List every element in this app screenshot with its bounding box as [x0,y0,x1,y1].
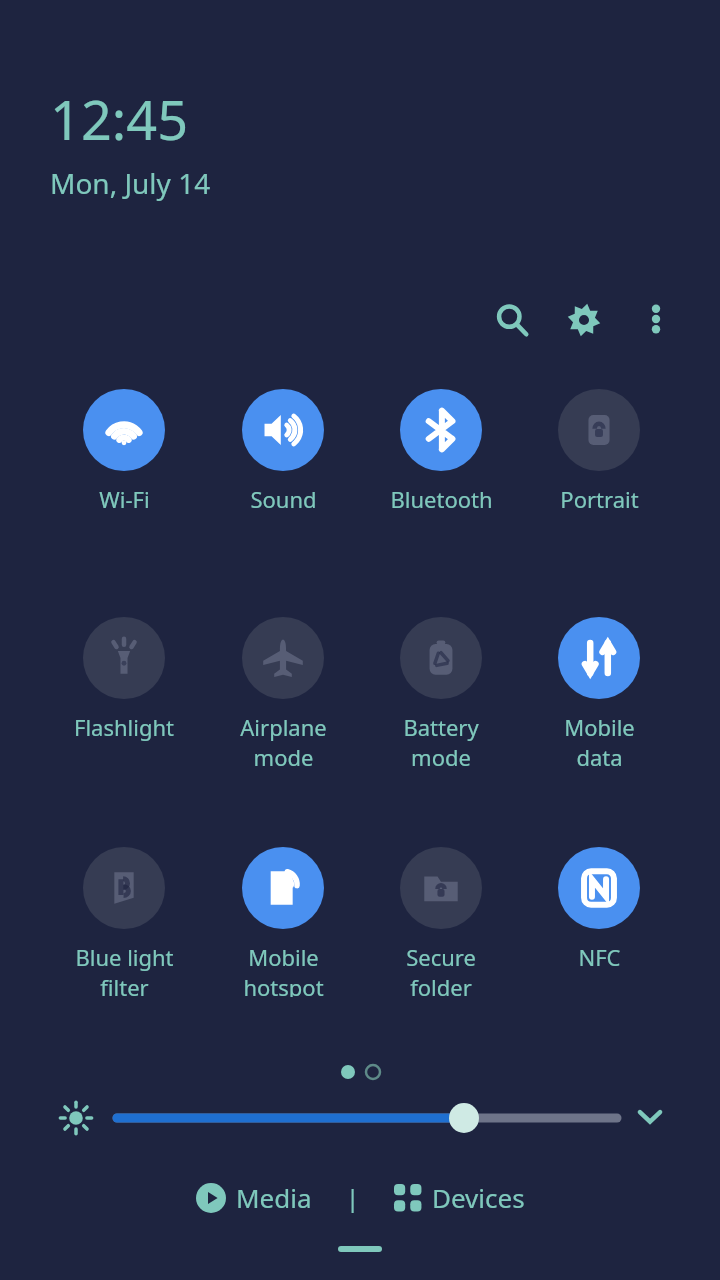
staticText: Media [236,1180,312,1215]
staticText: NFC [578,942,621,972]
button[interactable]: Mobile data [520,617,678,767]
button[interactable]: More options [627,290,685,348]
staticText: Mobile data [564,712,635,767]
button[interactable]: Airplane mode [204,617,362,767]
button[interactable]: Search [482,290,542,350]
button[interactable]: Expand brightness settings [626,1092,674,1140]
button[interactable]: Sound [204,389,362,539]
staticText: Battery mode [403,712,479,767]
button[interactable]: Media [188,1172,320,1223]
staticText: Mon, July 14 [50,164,211,202]
button[interactable]: Blue light filter [45,847,203,997]
button[interactable]: Flashlight [45,617,203,767]
staticText: Wi-Fi [99,484,150,514]
button[interactable]: Secure folder [362,847,520,997]
staticText: Mobile hotspot [243,942,324,997]
staticText: Blue light filter [75,942,174,997]
staticText: 12:45 [50,82,189,156]
staticText: Bluetooth [390,484,493,514]
button[interactable]: NFC [520,847,678,997]
staticText: Flashlight [74,712,174,742]
staticText: Secure folder [406,942,476,997]
button[interactable]: Wi-Fi [45,389,203,539]
button[interactable]: Collapse panel [325,1236,395,1262]
button[interactable]: Bluetooth [362,389,520,539]
staticText: Airplane mode [240,712,327,767]
button[interactable]: Settings [554,290,614,350]
button[interactable]: Portrait [520,389,678,539]
staticText: Devices [432,1180,525,1215]
staticText: Portrait [560,484,639,514]
button[interactable]: Battery mode [362,617,520,767]
button[interactable]: Brightness slider [110,1092,624,1144]
button[interactable]: Devices [386,1172,533,1223]
button[interactable]: Mobile hotspot [204,847,362,997]
button[interactable]: Brightness [50,1092,102,1144]
staticText: | [346,1181,360,1214]
staticText: Sound [250,484,317,514]
